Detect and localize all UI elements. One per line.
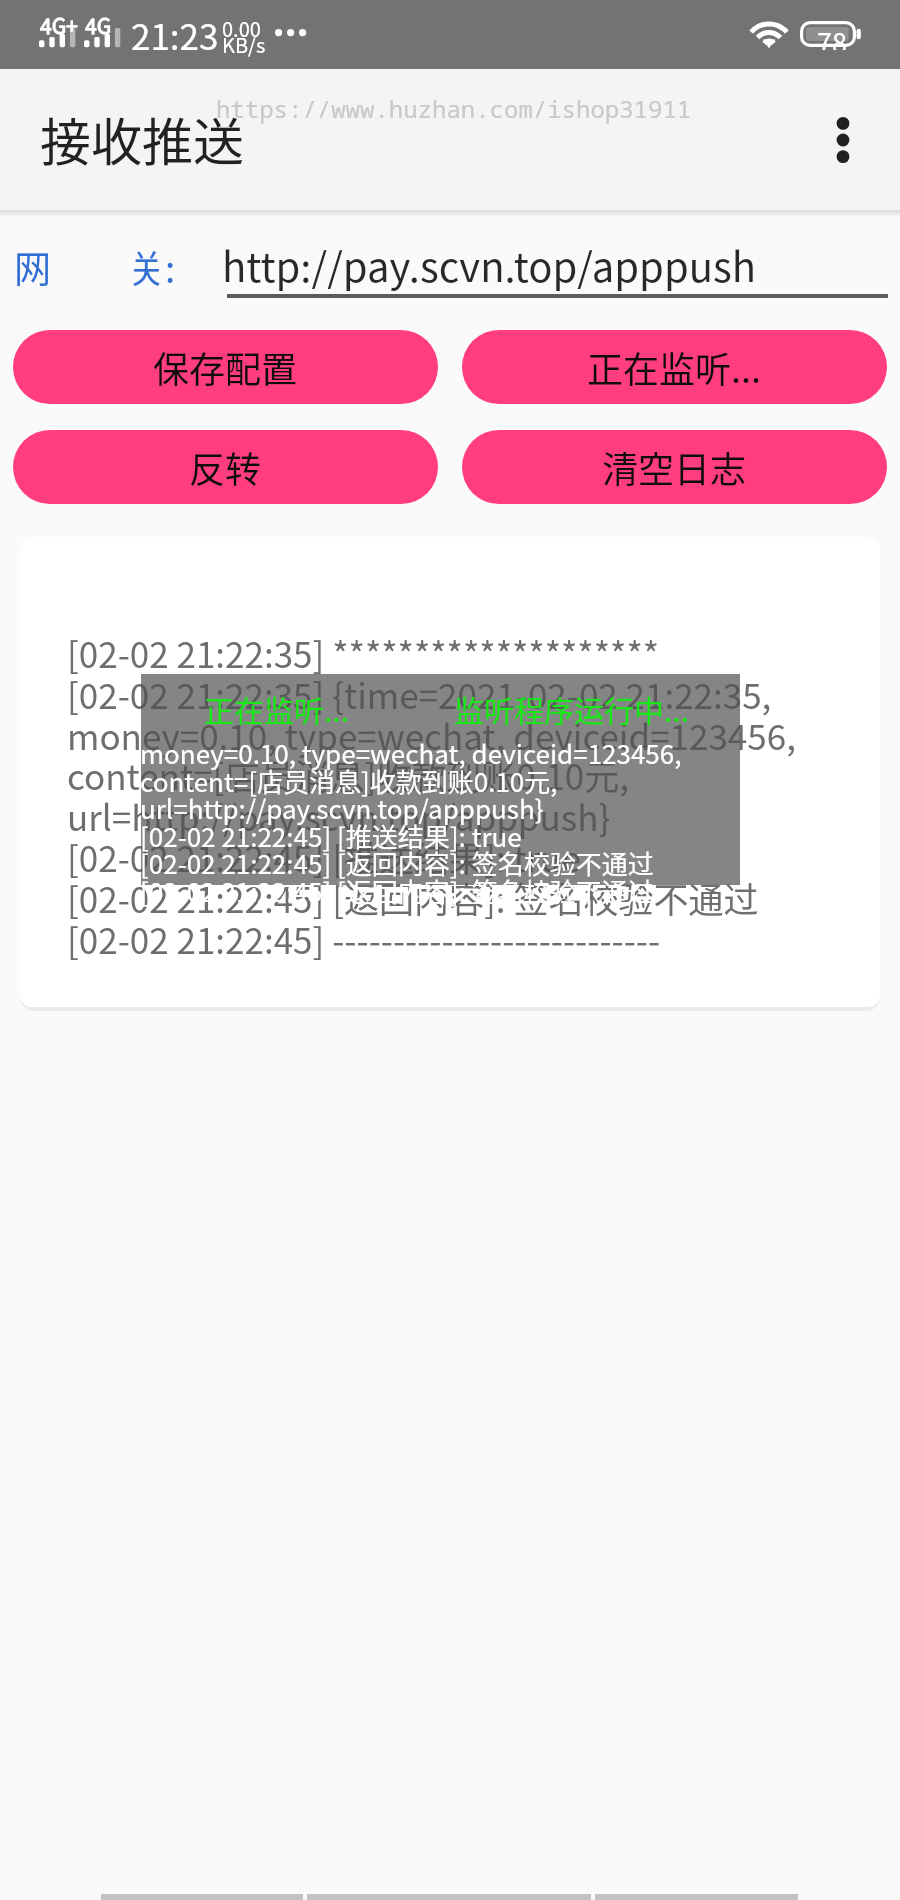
staticText: [02-02 21:22:35] ******************** — [67, 627, 660, 678]
staticText: 清空日志 — [602, 441, 747, 493]
staticText: [02-02 21:22:45] [返回内容]: 签名校验不通过 — [140, 844, 654, 882]
staticText: 反转 — [189, 441, 262, 493]
staticText: 正在监听... — [204, 687, 350, 730]
staticText: [02-02 21:22:45] [推送结果]: true — [140, 817, 522, 855]
button[interactable]: 反转 — [13, 430, 438, 504]
button[interactable]: More options — [812, 109, 874, 171]
staticText: 78 — [817, 22, 847, 50]
staticText: 4G+ — [40, 10, 78, 40]
staticText: content=[店员消息]收款到账0.10元, — [140, 762, 558, 800]
staticText: 0.00 — [222, 14, 261, 43]
staticText: 21:23 — [131, 9, 219, 60]
staticText: url=http://pay.scvn.top/apppush} — [67, 790, 611, 841]
staticText: money=0.10, type=wechat, deviceid=123456… — [140, 734, 682, 772]
staticText: [02-02 21:22:45] [返回内容]: 签名校验不通过 — [67, 872, 759, 923]
staticText: [02-02 21:22:45] -----------------------… — [67, 913, 661, 964]
button[interactable]: 保存配置 — [13, 330, 438, 404]
staticText: url=http://pay.scvn.top/apppush} — [140, 789, 544, 827]
staticText: 关: — [128, 240, 176, 294]
staticText: [02-02 21:22:45] [推送结果]: true — [67, 831, 581, 882]
staticText: 监听程序运行中... — [454, 687, 690, 730]
button[interactable]: 清空日志 — [462, 430, 887, 504]
staticText: money=0.10, type=wechat, deviceid=123456… — [67, 709, 796, 760]
staticText: 网 — [14, 240, 51, 294]
staticText: [02-02 21:22:35] {time=2021-02-02 21:22:… — [67, 668, 772, 719]
staticText: 4G — [85, 10, 112, 40]
staticText: 接收推送 — [40, 102, 245, 176]
staticText: [02-02 21:22:45] [返回内容]: 签名校验不通过 — [140, 872, 654, 910]
staticText: content=[店员消息]收款到账0.10元, — [67, 749, 629, 800]
staticText: http://pay.scvn.top/apppush — [222, 236, 756, 294]
button[interactable]: 正在监听... — [462, 330, 887, 404]
staticText: https://www.huzhan.com/ishop31911 — [216, 92, 692, 125]
staticText: KB/s — [222, 30, 266, 59]
staticText: 保存配置 — [153, 341, 298, 393]
staticText: 正在监听... — [587, 341, 762, 393]
